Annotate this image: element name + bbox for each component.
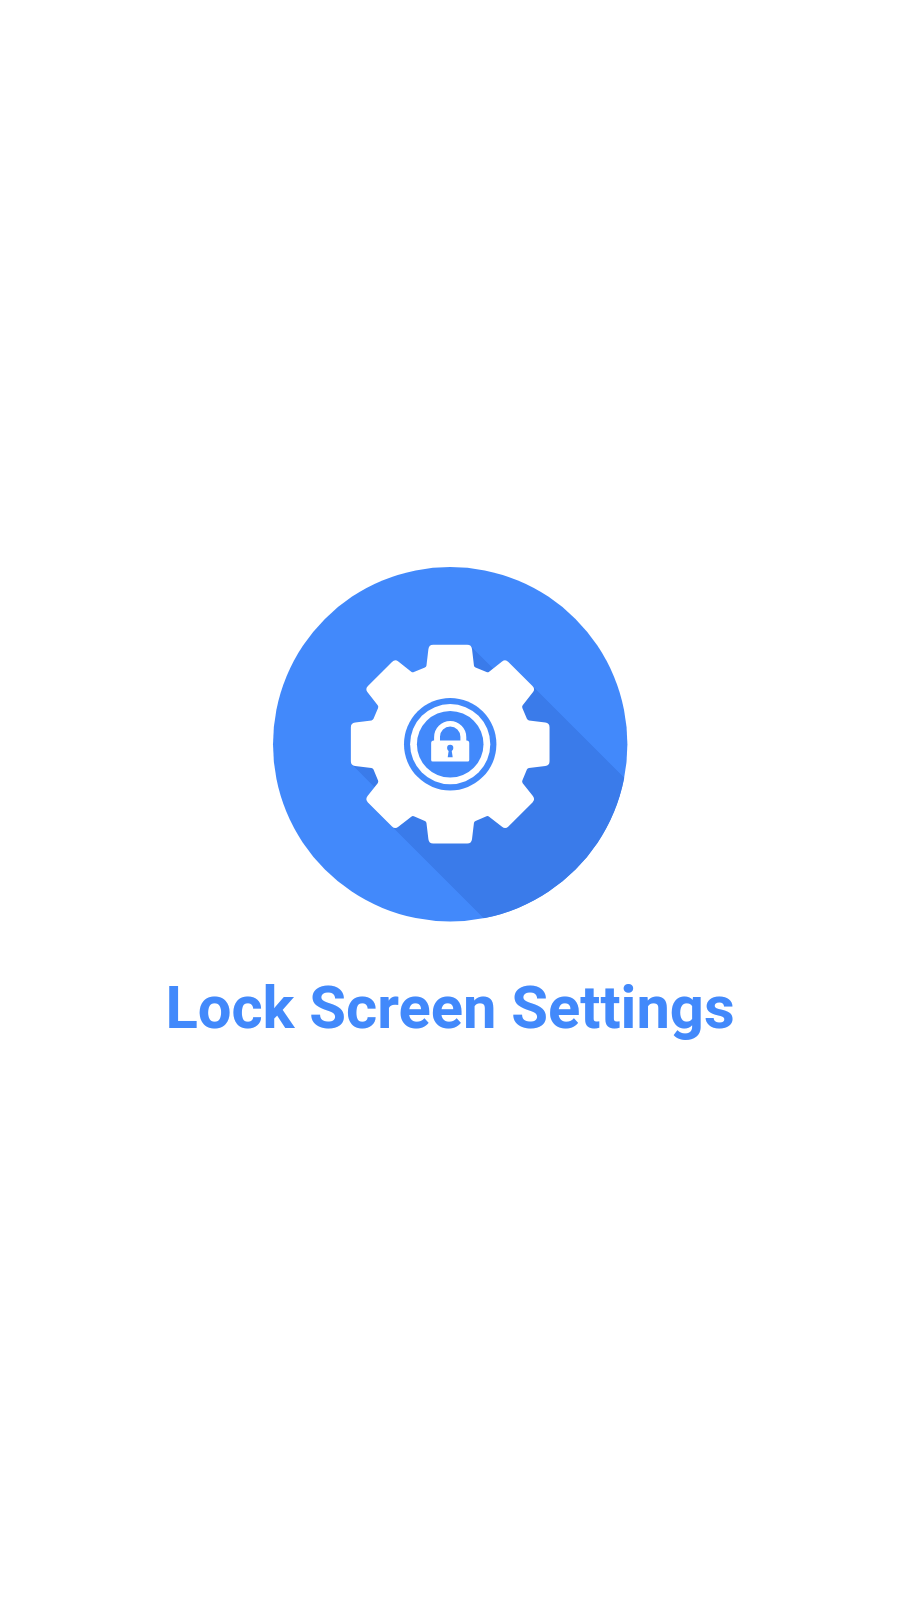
button[interactable]: Lock Screen Settings	[165, 973, 735, 1043]
